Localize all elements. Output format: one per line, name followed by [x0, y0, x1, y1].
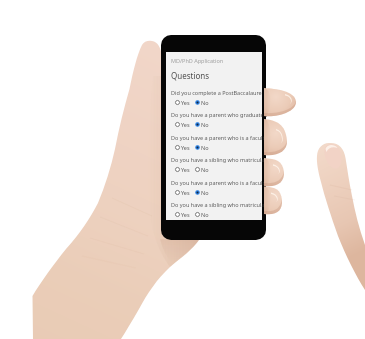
staticText: Did you complete a PostBaccalaure [171, 89, 262, 96]
staticText: Yes [181, 189, 190, 196]
button[interactable]: No [195, 99, 209, 106]
button[interactable]: No [195, 211, 209, 218]
staticText: No [201, 144, 209, 151]
staticText: Questions [171, 70, 210, 81]
staticText: Yes [181, 99, 190, 106]
staticText: No [201, 211, 209, 218]
staticText: Do you have a parent who graduated [171, 111, 267, 118]
button[interactable]: No [195, 189, 209, 196]
button[interactable]: Yes [175, 121, 190, 128]
staticText: Do you have a sibling who matriculat [171, 201, 267, 208]
staticText: No [201, 121, 209, 128]
button[interactable]: Yes [175, 99, 190, 106]
staticText: Yes [181, 144, 190, 151]
button[interactable]: No [195, 166, 209, 173]
button[interactable]: Yes [175, 166, 190, 173]
staticText: Do you have a parent who is a facult [171, 179, 265, 186]
button[interactable]: No [195, 144, 209, 151]
staticText: Yes [181, 121, 190, 128]
staticText: Yes [181, 166, 190, 173]
staticText: No [201, 166, 209, 173]
button[interactable]: Yes [175, 144, 190, 151]
staticText: Do you have a sibling who matricula [171, 156, 265, 163]
staticText: MD/PhD Application [171, 57, 224, 64]
button[interactable]: Yes [175, 211, 190, 218]
staticText: Do you have a parent who is a faculty [171, 134, 267, 141]
staticText: Yes [181, 211, 190, 218]
button[interactable]: No [195, 121, 209, 128]
staticText: No [201, 189, 209, 196]
button[interactable]: Yes [175, 189, 190, 196]
staticText: No [201, 99, 209, 106]
